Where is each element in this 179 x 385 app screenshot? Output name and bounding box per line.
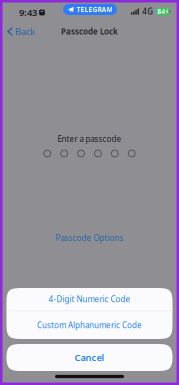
staticText: 9:43 bbox=[19, 6, 37, 19]
staticText: Custom Alphanumeric Code bbox=[37, 320, 142, 330]
staticText: Back bbox=[15, 25, 35, 38]
button[interactable]: Custom Alphanumeric Code bbox=[6, 311, 172, 339]
staticText: Passcode Lock bbox=[61, 26, 118, 37]
staticText: 84 bbox=[157, 7, 165, 16]
staticText: 4G bbox=[142, 6, 153, 17]
staticText: Passcode Options bbox=[55, 233, 123, 243]
button[interactable]: Telegram live activity bbox=[63, 4, 117, 15]
button[interactable]: Passcode Options bbox=[47, 230, 131, 246]
staticText: TELEGRAM bbox=[76, 5, 112, 14]
staticText: 4-Digit Numeric Code bbox=[48, 294, 130, 304]
staticText: Cancel bbox=[74, 351, 104, 364]
staticText: Enter a passcode bbox=[57, 134, 121, 144]
button[interactable]: 4-Digit Numeric Code bbox=[6, 288, 172, 310]
button[interactable]: Back bbox=[1, 22, 41, 40]
button[interactable]: Cancel bbox=[6, 344, 172, 371]
